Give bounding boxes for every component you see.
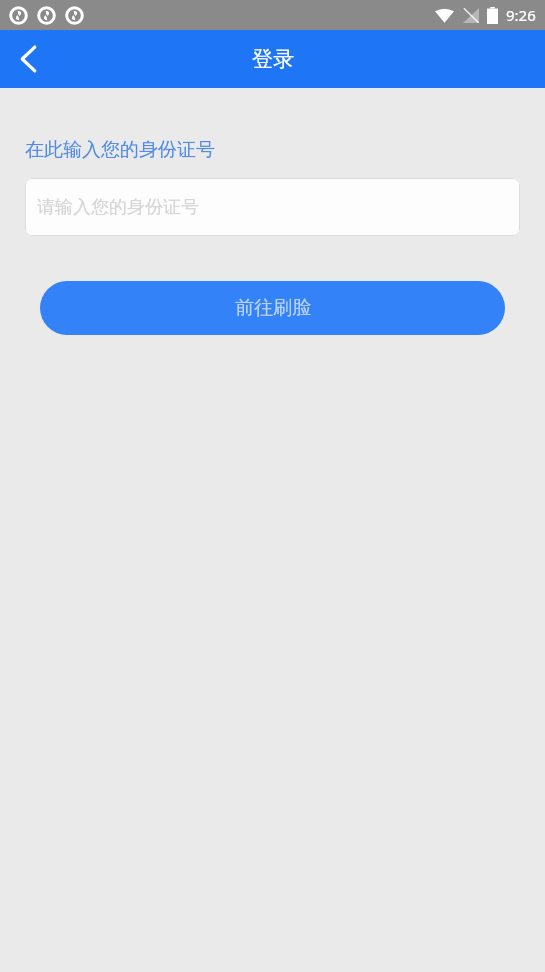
button[interactable]: 请输入您的身份证号 (25, 178, 520, 236)
staticText: 登录 (252, 46, 294, 72)
button[interactable]: Back (0, 31, 56, 87)
staticText: 9:26 (506, 5, 536, 25)
staticText: 请输入您的身份证号 (37, 196, 199, 219)
button[interactable]: 前往刷脸 (40, 281, 505, 335)
staticText: 前往刷脸 (235, 296, 311, 320)
staticText: 在此输入您的身份证号 (25, 138, 215, 162)
